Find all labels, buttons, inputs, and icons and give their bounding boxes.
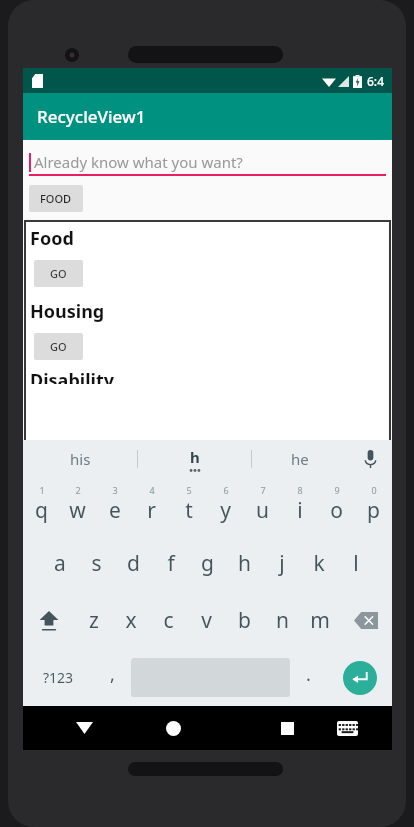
button[interactable]: Already know what you want?: [29, 148, 386, 176]
button[interactable]: s: [78, 535, 115, 592]
button[interactable]: c: [149, 592, 187, 649]
staticText: f: [167, 549, 175, 578]
button[interactable]: g: [189, 535, 226, 592]
staticText: 6:4: [367, 73, 384, 89]
button[interactable]: v: [187, 592, 225, 649]
button[interactable]: z: [75, 592, 112, 649]
staticText: 0: [371, 484, 377, 496]
staticText: t: [185, 496, 193, 525]
staticText: i: [297, 496, 303, 525]
button[interactable]: a: [41, 535, 78, 592]
staticText: d: [127, 549, 140, 578]
staticText: ?123: [43, 668, 74, 687]
staticText: o: [330, 496, 343, 525]
button[interactable]: 6: [207, 478, 244, 535]
button[interactable]: Home: [143, 706, 203, 750]
staticText: his: [70, 449, 91, 469]
staticText: n: [276, 606, 289, 635]
button[interactable]: Food: [26, 222, 389, 295]
staticText: s: [91, 549, 102, 578]
button[interactable]: h: [138, 440, 251, 478]
button[interactable]: Backspace: [339, 592, 392, 649]
button[interactable]: ,: [94, 649, 131, 706]
button[interactable]: Disability: [26, 368, 389, 384]
button[interactable]: FOOD: [29, 185, 83, 212]
button[interactable]: l: [337, 535, 374, 592]
button[interactable]: .: [290, 649, 327, 706]
staticText: .: [306, 662, 311, 687]
button[interactable]: k: [300, 535, 337, 592]
button[interactable]: Recent apps: [257, 706, 317, 750]
staticText: x: [125, 606, 137, 635]
button[interactable]: ?123: [23, 649, 94, 706]
button[interactable]: GO: [34, 260, 83, 287]
staticText: 3: [112, 484, 118, 496]
staticText: b: [238, 606, 251, 635]
button[interactable]: 7: [244, 478, 281, 535]
staticText: 4: [149, 484, 155, 496]
button[interactable]: GO: [34, 333, 83, 360]
button[interactable]: 9: [318, 478, 355, 535]
button[interactable]: 4: [133, 478, 170, 535]
staticText: l: [353, 549, 359, 578]
button[interactable]: Housing: [26, 295, 389, 368]
staticText: a: [54, 549, 66, 578]
button[interactable]: 1: [23, 478, 59, 535]
staticText: w: [69, 496, 86, 525]
staticText: 5: [186, 484, 192, 496]
button[interactable]: h: [226, 535, 263, 592]
button[interactable]: Switch keyboard: [317, 706, 377, 750]
staticText: u: [256, 496, 269, 525]
staticText: p: [367, 496, 380, 525]
staticText: Already know what you want?: [34, 152, 243, 172]
staticText: 9: [334, 484, 340, 496]
staticText: j: [279, 549, 285, 578]
staticText: c: [163, 606, 174, 635]
button[interactable]: his: [23, 440, 137, 478]
button[interactable]: Enter: [343, 661, 377, 695]
staticText: GO: [50, 266, 67, 281]
staticText: 7: [260, 484, 266, 496]
staticText: 2: [75, 484, 81, 496]
staticText: RecycleView1: [37, 105, 146, 128]
staticText: Disability: [30, 368, 114, 384]
staticText: r: [147, 496, 156, 525]
staticText: y: [220, 496, 231, 525]
staticText: Housing: [30, 299, 105, 324]
staticText: e: [109, 496, 121, 525]
button[interactable]: m: [301, 592, 339, 649]
staticText: h: [190, 447, 200, 467]
staticText: 8: [297, 484, 303, 496]
button[interactable]: 3: [96, 478, 133, 535]
staticText: q: [35, 496, 48, 525]
button[interactable]: x: [112, 592, 149, 649]
button[interactable]: 8: [281, 478, 318, 535]
staticText: 1: [39, 484, 45, 496]
button[interactable]: 0: [355, 478, 392, 535]
button[interactable]: Shift: [23, 592, 75, 649]
button[interactable]: 2: [59, 478, 96, 535]
button[interactable]: he: [252, 440, 348, 478]
button[interactable]: d: [115, 535, 152, 592]
staticText: h: [238, 549, 251, 578]
staticText: k: [313, 549, 325, 578]
staticText: 6: [223, 484, 229, 496]
button[interactable]: b: [225, 592, 263, 649]
staticText: GO: [50, 339, 67, 354]
staticText: ,: [110, 662, 115, 687]
staticText: z: [89, 606, 99, 635]
button[interactable]: 5: [170, 478, 207, 535]
button[interactable]: Voice input: [348, 440, 392, 478]
button[interactable]: Back: [55, 706, 114, 750]
staticText: he: [291, 449, 309, 469]
staticText: Food: [30, 226, 74, 251]
staticText: m: [310, 606, 330, 635]
staticText: g: [201, 549, 214, 578]
staticText: FOOD: [40, 191, 72, 206]
button[interactable]: f: [152, 535, 189, 592]
button[interactable]: j: [263, 535, 300, 592]
staticText: v: [201, 606, 212, 635]
button[interactable]: n: [263, 592, 301, 649]
